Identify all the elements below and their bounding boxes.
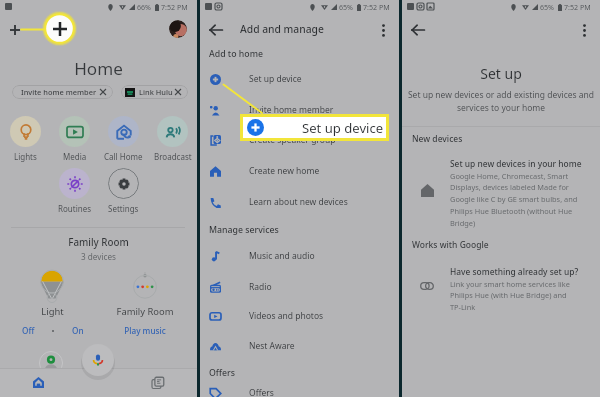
staticText: Set up device [249, 73, 302, 85]
staticText: Google Home, Chromecast, Smart Displays,… [450, 171, 590, 228]
staticText: Radio [249, 281, 272, 293]
button[interactable]: Videos and photos [200, 303, 399, 329]
staticText: 65% [339, 2, 354, 12]
button[interactable]: Light [25, 305, 80, 318]
button[interactable]: Off [22, 325, 35, 336]
staticText: Videos and photos [249, 310, 324, 322]
button[interactable]: Lights [0, 116, 50, 162]
button[interactable]: On [72, 325, 84, 336]
button[interactable]: Have something already set up? [450, 266, 590, 312]
staticText: Manage services [209, 224, 279, 236]
button[interactable]: Create speaker group [200, 127, 399, 153]
staticText: Broadcast [154, 151, 192, 162]
staticText: Have something already set up? [450, 266, 579, 277]
staticText: Create speaker group [249, 134, 336, 146]
button[interactable]: Add [6, 21, 23, 38]
staticText: 65% [540, 2, 555, 12]
staticText: 7:52 PM [161, 2, 188, 12]
staticText: Offers [249, 387, 274, 397]
staticText: Family Room [0, 236, 197, 249]
staticText: Play music [112, 325, 178, 336]
button[interactable]: Feed [145, 370, 170, 395]
button[interactable]: Broadcast [148, 116, 197, 162]
staticText: Link Hulu [139, 87, 173, 97]
button[interactable]: Call Home [99, 116, 148, 162]
staticText: Set up new devices in your home [450, 158, 582, 169]
staticText: 3 devices [0, 251, 197, 262]
button[interactable]: Invite home member [12, 85, 113, 99]
staticText: Offers [209, 367, 236, 379]
button[interactable]: Routines [50, 168, 99, 214]
button[interactable]: Google Assistant [82, 344, 114, 376]
button[interactable]: Offers [200, 380, 399, 397]
button[interactable]: Home [26, 370, 51, 395]
button[interactable]: Set up device [240, 114, 389, 141]
staticText: 7:52 PM [564, 2, 591, 12]
button[interactable]: Play music [112, 325, 178, 336]
staticText: Light [25, 305, 80, 318]
staticText: Create new home [249, 165, 320, 177]
staticText: Set up device [302, 119, 384, 137]
button[interactable]: Radio [200, 274, 399, 300]
button[interactable]: Back [206, 20, 226, 40]
button[interactable]: Music and audio [200, 243, 399, 269]
staticText: Family Room [112, 305, 178, 318]
staticText: On [72, 325, 84, 336]
staticText: Invite home member [21, 87, 97, 97]
button[interactable]: Back [408, 20, 428, 40]
staticText: 66% [137, 2, 152, 12]
staticText: Link your smart home services like Phili… [450, 279, 576, 312]
staticText: Set up new devices or add existing devic… [406, 89, 596, 114]
button[interactable]: Invite home member [200, 97, 399, 123]
button[interactable]: More options [374, 21, 392, 39]
staticText: Add and manage [240, 22, 324, 36]
staticText: Invite home member [249, 104, 334, 116]
staticText: Nest Aware [249, 340, 295, 352]
staticText: 7:52 PM [363, 2, 390, 12]
staticText: Home [0, 57, 197, 80]
button[interactable]: Account [169, 20, 187, 38]
staticText: New devices [412, 133, 463, 145]
button[interactable]: Learn about new devices [200, 189, 399, 215]
button[interactable]: Link Hulu [121, 85, 188, 99]
button[interactable]: Set up new devices in your home [450, 158, 590, 228]
staticText: Add to home [209, 48, 263, 60]
staticText: Call Home [104, 151, 143, 162]
button[interactable]: Set up device [200, 66, 399, 92]
button[interactable]: More options [575, 21, 593, 39]
button[interactable]: Media [50, 116, 99, 162]
staticText: Routines [58, 203, 91, 214]
staticText: Music and audio [249, 250, 315, 262]
staticText: Learn about new devices [249, 196, 348, 208]
button[interactable]: Family Room [112, 305, 178, 318]
staticText: Settings [108, 203, 139, 214]
staticText: Media [63, 151, 87, 162]
button[interactable]: Nest Aware [200, 333, 399, 359]
button[interactable]: Settings [99, 168, 148, 214]
button[interactable]: Create new home [200, 158, 399, 184]
staticText: Lights [14, 151, 37, 162]
staticText: Works with Google [412, 239, 489, 251]
staticText: Off [22, 325, 35, 336]
staticText: Set up [402, 64, 600, 83]
